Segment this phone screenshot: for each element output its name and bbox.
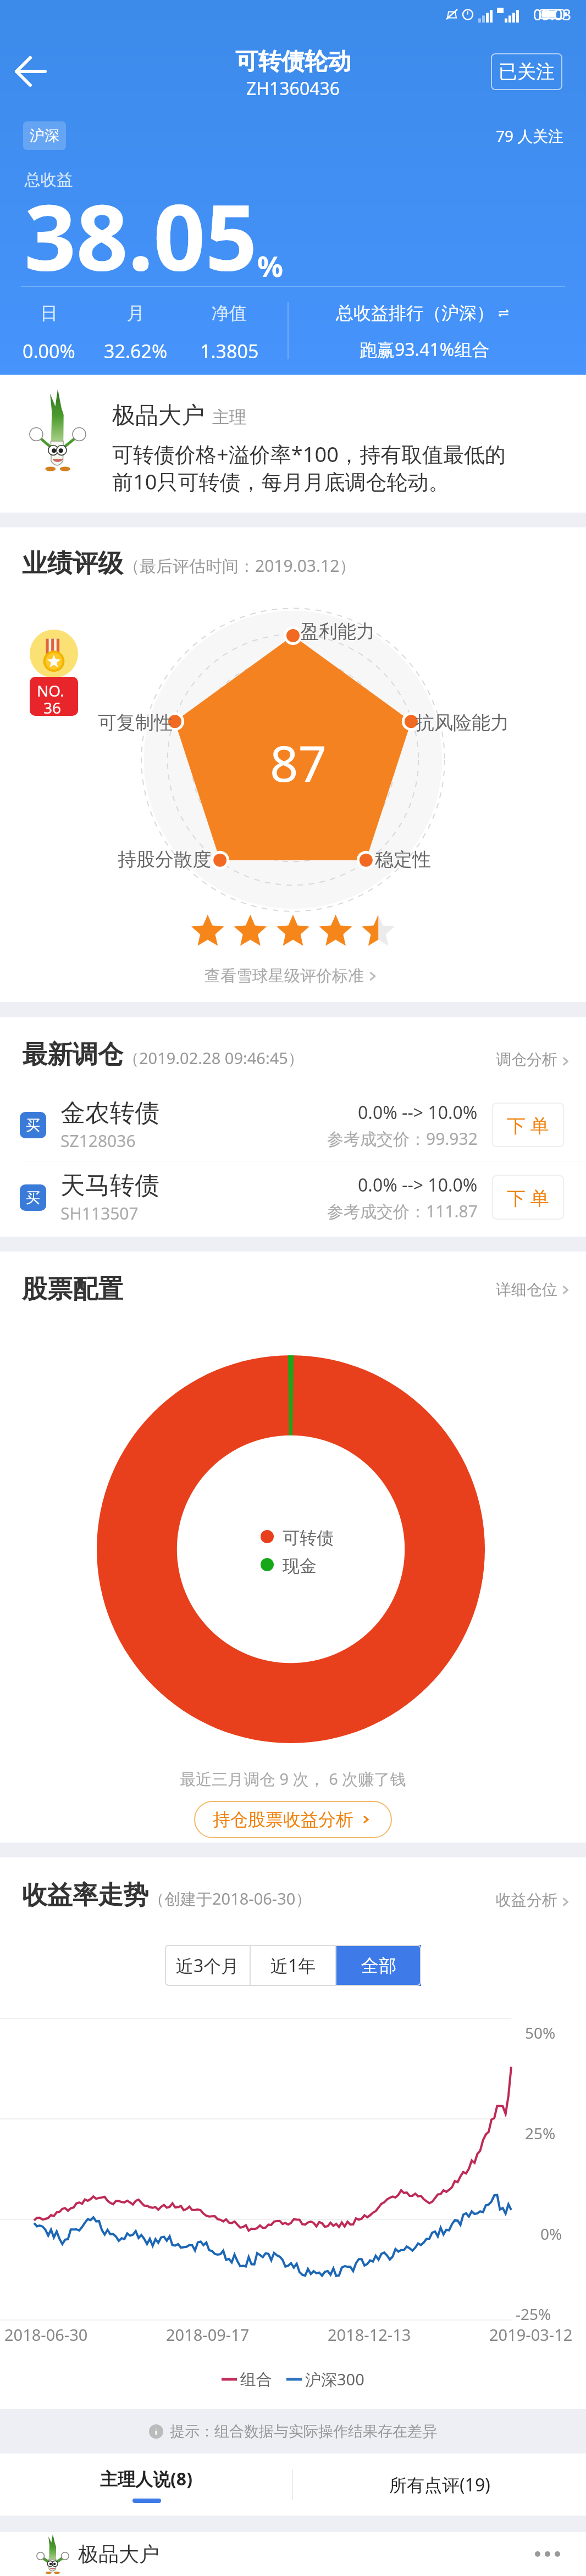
staticText: 抗风险能力 <box>416 711 509 735</box>
staticText: 总收益 <box>25 170 73 190</box>
staticText: 2018-12-13 <box>328 2324 411 2345</box>
button[interactable]: 所有点评(19) <box>293 2453 586 2516</box>
staticText: 日 <box>40 302 58 324</box>
staticText: 所有点评(19) <box>389 2473 490 2497</box>
staticText: 主理 <box>212 407 246 428</box>
staticText: SZ128036 <box>60 1130 136 1152</box>
staticText: 36 <box>43 697 62 716</box>
staticText: % <box>257 246 283 285</box>
staticText: 38.05 <box>24 174 257 297</box>
staticText: 32.62% <box>104 338 168 364</box>
button[interactable]: 调仓分析 <box>496 1051 574 1071</box>
button[interactable]: 详细仓位 <box>496 1280 574 1299</box>
button[interactable]: 近1年 <box>251 1945 335 1986</box>
staticText: （最后评估时间：2019.03.12） <box>123 554 356 577</box>
staticText: 全部 <box>361 1955 396 1977</box>
staticText: （2019.02.28 09:46:45） <box>123 1047 304 1069</box>
staticText: NO. <box>37 680 64 701</box>
staticText: 总收益排行（沪深） <box>336 302 494 324</box>
staticText: -25% <box>516 2304 551 2324</box>
staticText: 0% <box>540 2223 562 2244</box>
staticText: 下 单 <box>507 1185 549 1210</box>
staticText: 买 <box>26 1189 40 1207</box>
staticText: 业绩评级 <box>22 548 123 580</box>
staticText: SH113507 <box>60 1202 139 1225</box>
button[interactable]: More <box>531 2549 564 2560</box>
button[interactable]: 持仓股票收益分析 <box>194 1801 392 1838</box>
staticText: 收益率走势 <box>22 1879 148 1911</box>
staticText: ZH1360436 <box>246 76 340 101</box>
staticText: 调仓分析 <box>496 1050 557 1069</box>
button[interactable]: 查看雪球星级评价标准 <box>0 966 586 986</box>
staticText: 近1年 <box>270 1954 316 1978</box>
button[interactable]: 下 单 <box>492 1175 564 1220</box>
staticText: 0.0% --> 10.0% <box>358 1173 478 1197</box>
staticText: 参考成交价：99.932 <box>327 1127 478 1150</box>
staticText: 现金 <box>283 1555 317 1577</box>
staticText: 提示：组合数据与实际操作结果存在差异 <box>170 2422 437 2441</box>
button[interactable]: 全部 <box>336 1945 421 1986</box>
staticText: 2018-06-30 <box>4 2324 88 2345</box>
staticText: 87 <box>270 729 327 797</box>
staticText: 可转债轮动 <box>235 47 351 76</box>
staticText: 极品大户 <box>112 401 204 430</box>
staticText: 股票配置 <box>22 1273 123 1305</box>
staticText: 跑赢93.41%组合 <box>360 337 490 361</box>
staticText: 1.3805 <box>200 338 259 364</box>
button[interactable]: 主理人说(8) <box>0 2453 292 2516</box>
button[interactable]: 总收益排行（沪深） <box>289 287 560 375</box>
staticText: 2018-09-17 <box>166 2324 250 2345</box>
staticText: 买 <box>26 1116 40 1134</box>
staticText: 2019-03-12 <box>489 2324 573 2345</box>
staticText: 收益分析 <box>496 1890 557 1910</box>
button[interactable]: 买 <box>0 1161 586 1233</box>
staticText: 可转债 <box>283 1527 334 1549</box>
staticText: 主理人说(8) <box>100 2467 193 2491</box>
staticText: （创建于2018-06-30） <box>148 1888 312 1910</box>
button[interactable]: 买 <box>0 1089 586 1161</box>
staticText: 金农转债 <box>60 1098 159 1129</box>
staticText: 09:03 <box>533 4 572 25</box>
staticText: 0.00% <box>23 338 75 364</box>
staticText: 可转债价格+溢价率*100，持有取值最低的前10只可转债，每月月底调仓轮动。 <box>112 439 513 496</box>
staticText: 沪深300 <box>305 2368 364 2390</box>
staticText: 可复制性 <box>98 711 173 735</box>
staticText: 持股分散度 <box>118 848 211 871</box>
button[interactable]: 收益分析 <box>496 1892 574 1911</box>
button[interactable]: 下 单 <box>492 1103 564 1147</box>
staticText: 稳定性 <box>375 848 431 871</box>
staticText: 最新调仓 <box>22 1039 123 1071</box>
staticText: 持仓股票收益分析 <box>213 1809 353 1831</box>
button[interactable]: 近3个月 <box>165 1945 250 1986</box>
staticText: 月 <box>127 302 145 324</box>
staticText: 查看雪球星级评价标准 <box>204 966 364 986</box>
staticText: 净值 <box>212 302 247 324</box>
button[interactable]: 已关注 <box>491 53 562 90</box>
button[interactable]: Back <box>10 51 52 92</box>
staticText: 下 单 <box>507 1112 549 1138</box>
staticText: 最近三月调仓 9 次， 6 次赚了钱 <box>180 1768 406 1790</box>
staticText: 天马转债 <box>60 1170 159 1201</box>
staticText: 近3个月 <box>176 1954 239 1978</box>
staticText: 盈利能力 <box>300 620 375 643</box>
staticText: 参考成交价：111.87 <box>327 1200 478 1222</box>
staticText: 25% <box>525 2123 556 2144</box>
staticText: 已关注 <box>499 60 555 84</box>
staticText: 50% <box>525 2022 556 2043</box>
staticText: 详细仓位 <box>496 1280 557 1299</box>
staticText: 0.0% --> 10.0% <box>358 1100 478 1125</box>
staticText: 沪深 <box>30 126 59 145</box>
staticText: 极品大户 <box>78 2541 159 2567</box>
staticText: 79 人关注 <box>496 125 564 146</box>
staticText: 组合 <box>240 2369 272 2390</box>
